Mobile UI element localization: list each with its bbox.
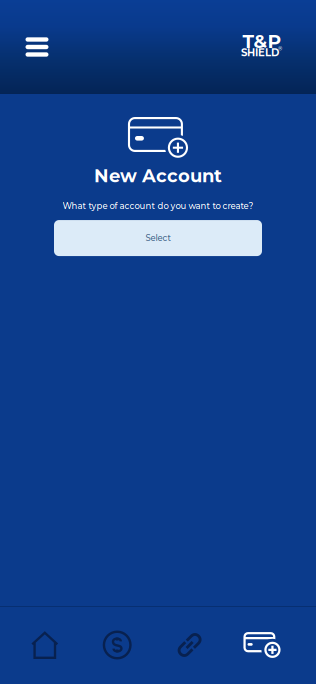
staticText: T&P [242,30,281,53]
button[interactable]: Menu [15,25,59,69]
staticText: SHIELD [241,46,279,59]
button[interactable]: Links [153,614,226,676]
button[interactable]: T and P Shield [241,36,281,58]
button[interactable]: New account [226,614,298,676]
staticText: New Account [94,165,222,187]
button[interactable]: Select [54,220,262,256]
button[interactable]: Home [9,614,81,676]
staticText: ® [278,45,282,52]
button[interactable]: Payments [81,614,153,676]
staticText: What type of account do you want to crea… [62,201,253,211]
staticText: Select [145,233,170,243]
